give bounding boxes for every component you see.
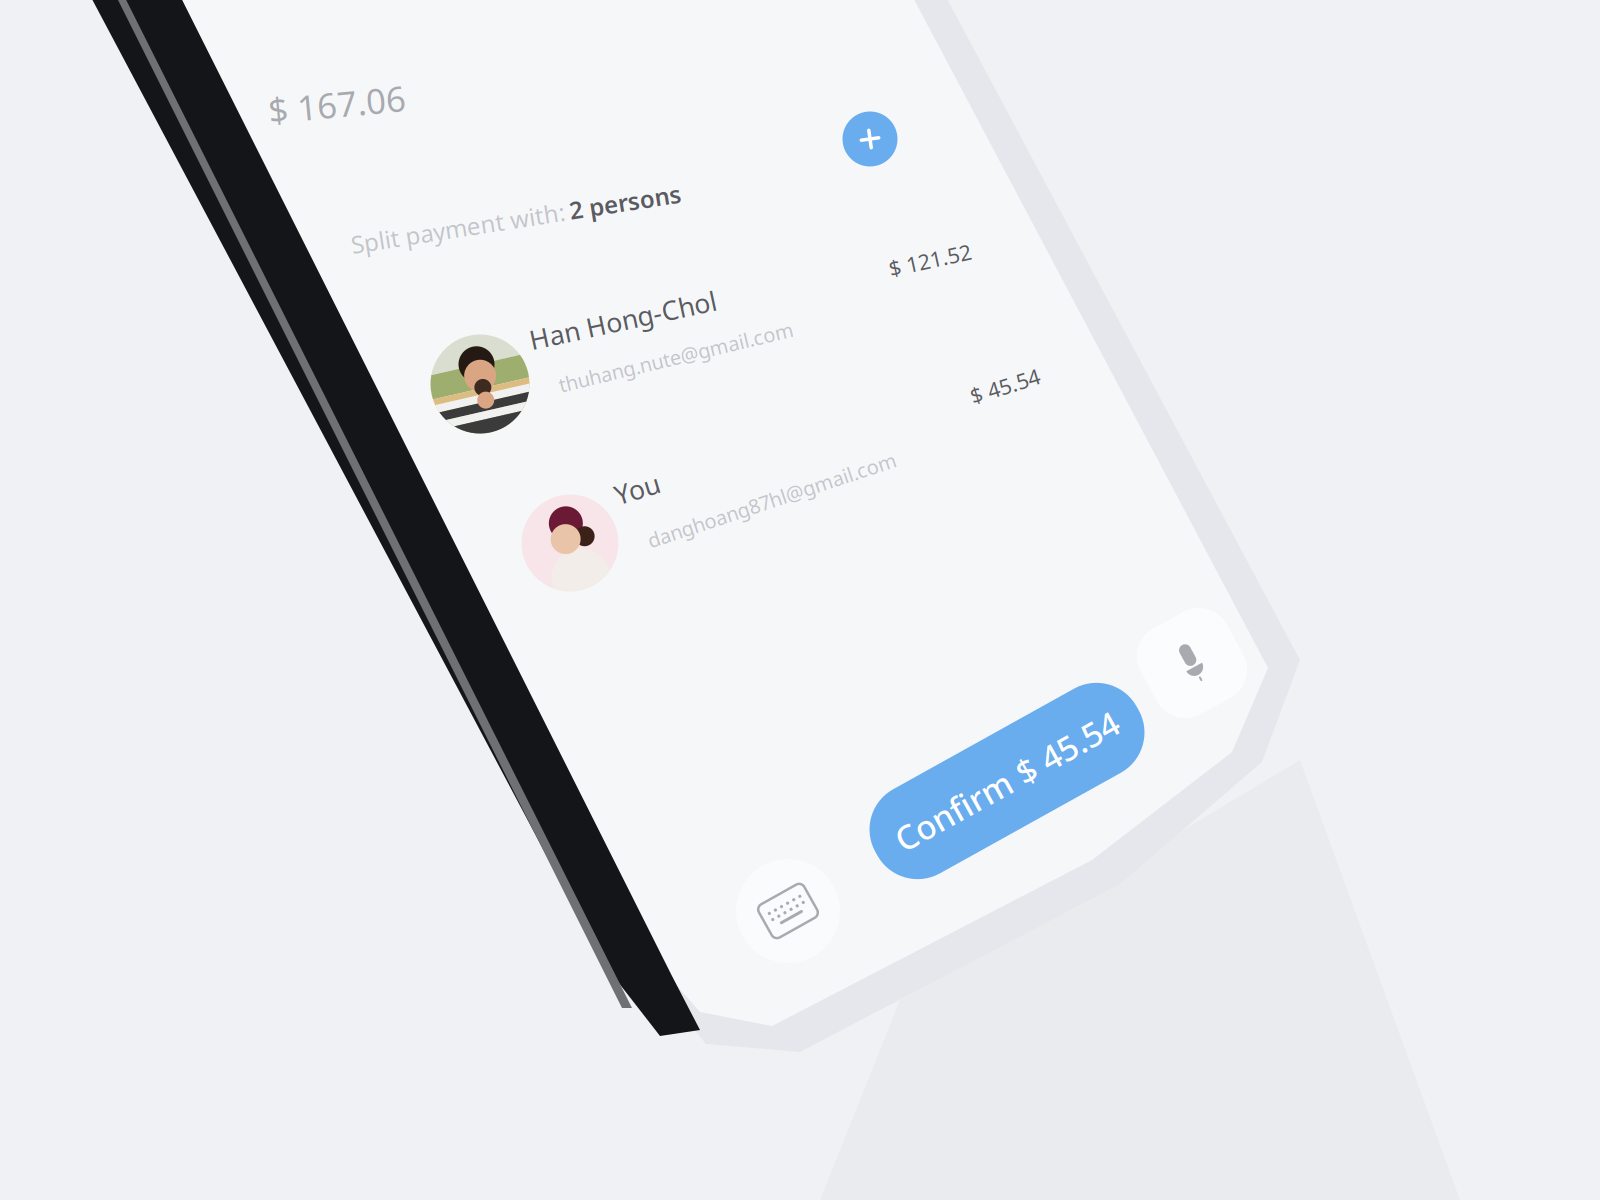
staticText: Confirm $ 45.54 bbox=[881, 759, 1132, 803]
button[interactable]: Add person bbox=[842, 111, 897, 166]
staticText: Han Hong-Chol bbox=[527, 302, 718, 338]
staticText: 2 persons bbox=[570, 203, 683, 235]
staticText: thuhang.nute@gmail.com bbox=[555, 344, 796, 370]
staticText: danghoang87hl@gmail.com bbox=[641, 487, 902, 513]
button[interactable]: Keyboard bbox=[736, 859, 840, 963]
button[interactable]: Confirm $ 45.54 bbox=[857, 733, 1156, 829]
button[interactable]: Voice input bbox=[1143, 614, 1241, 712]
staticText: You bbox=[614, 471, 660, 507]
staticText: Split payment with: bbox=[349, 203, 565, 235]
staticText: $ 121.52 bbox=[888, 246, 972, 274]
staticText: $ 167.06 bbox=[268, 81, 406, 127]
staticText: $ 45.54 bbox=[969, 372, 1041, 400]
